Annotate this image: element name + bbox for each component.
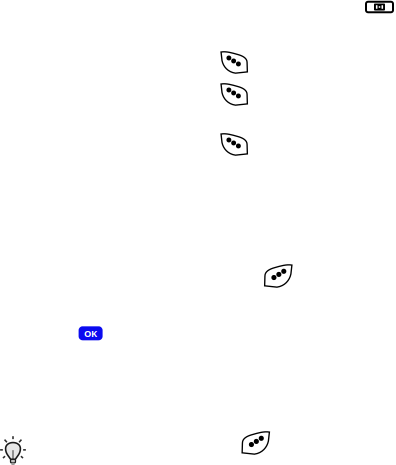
button[interactable]: Tips (0, 434, 26, 465)
button[interactable]: Message (219, 50, 247, 73)
button[interactable]: Message (264, 263, 293, 287)
button[interactable]: Message (219, 132, 247, 155)
button[interactable]: Battery (364, 0, 394, 13)
button[interactable]: Message (242, 430, 271, 454)
button[interactable]: OK (79, 326, 103, 340)
button[interactable]: Message (219, 82, 247, 105)
staticText: OK (84, 327, 97, 339)
